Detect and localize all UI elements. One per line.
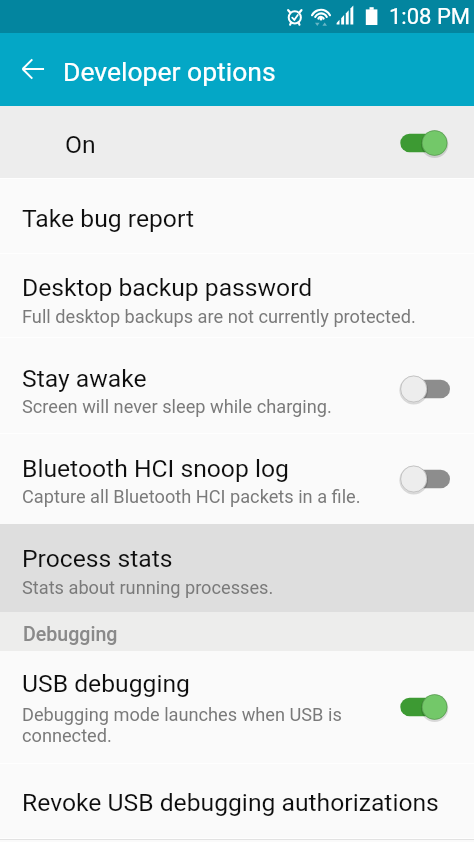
staticText: Screen will never sleep while charging. [22, 396, 332, 417]
button[interactable]: Stay awake [0, 338, 474, 433]
staticText: 1:08 PM [389, 4, 470, 30]
staticText: Debugging mode launches when USB is [22, 704, 342, 725]
button[interactable]: USB debugging [0, 651, 474, 763]
staticText: Debugging [23, 623, 118, 646]
button[interactable]: Desktop backup password [0, 254, 474, 337]
button[interactable]: On [0, 106, 474, 178]
staticText: Bluetooth HCI snoop log [22, 454, 289, 483]
button[interactable]: Debugging [0, 612, 474, 651]
staticText: Stats about running processes. [22, 577, 274, 598]
button[interactable]: Back [9, 45, 57, 93]
button[interactable]: Take bug report [0, 179, 474, 254]
staticText: Process stats [22, 544, 173, 573]
button[interactable]: Bluetooth HCI snoop log, off [399, 461, 451, 497]
button[interactable]: USB debugging, on [399, 689, 451, 725]
staticText: Stay awake [22, 364, 147, 393]
staticText: Developer options [63, 56, 276, 87]
staticText: Revoke USB debugging authorizations [22, 788, 439, 817]
staticText: Capture all Bluetooth HCI packets in a f… [22, 486, 361, 507]
staticText: connected. [22, 725, 112, 746]
staticText: On [65, 130, 96, 159]
button[interactable]: Stay awake, off [399, 371, 451, 407]
button[interactable]: Process stats [0, 524, 474, 612]
button[interactable]: Revoke USB debugging authorizations [0, 764, 474, 838]
button[interactable]: Bluetooth HCI snoop log [0, 434, 474, 524]
staticText: Full desktop backups are not currently p… [22, 306, 416, 327]
staticText: Desktop backup password [22, 273, 313, 302]
staticText: Take bug report [22, 204, 194, 233]
staticText: USB debugging [22, 669, 190, 698]
button[interactable]: Developer options, on [399, 125, 451, 161]
